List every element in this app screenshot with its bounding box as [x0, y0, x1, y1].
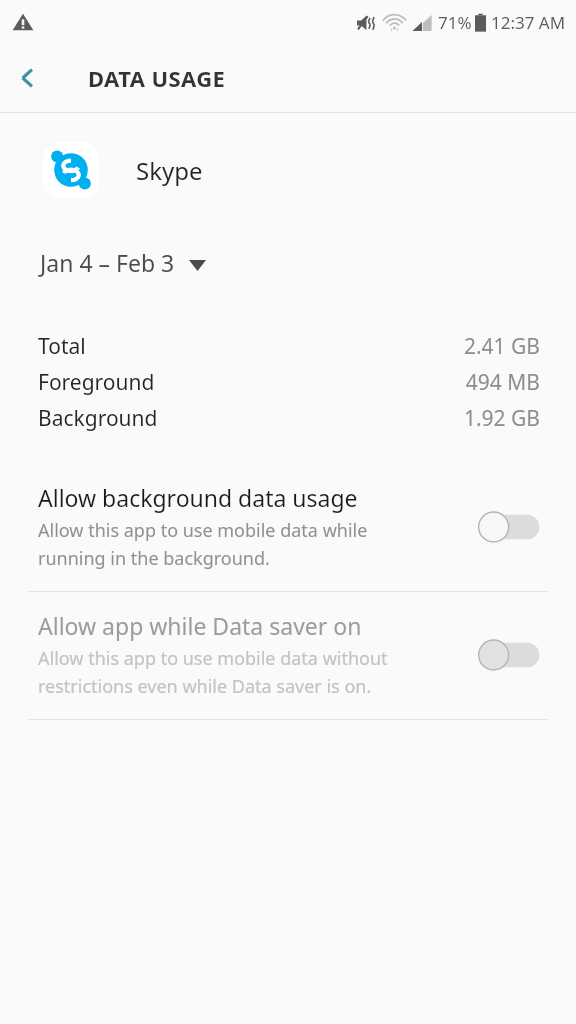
staticText: Foreground [38, 368, 155, 397]
staticText: restrictions even while Data saver is on… [38, 674, 372, 699]
button[interactable]: Allow app while Data saver on [0, 592, 576, 719]
staticText: 71% [438, 11, 472, 34]
staticText: 1.92 GB [463, 404, 540, 433]
button[interactable]: Skype [0, 141, 576, 199]
staticText: Total [38, 332, 86, 361]
button[interactable]: Toggle [476, 512, 542, 542]
button[interactable]: Allow background data usage [0, 464, 576, 591]
staticText: Allow this app to use mobile data while [38, 518, 368, 543]
staticText: 2.41 GB [463, 332, 540, 361]
button[interactable]: Jan 4 – Feb 3 [0, 243, 226, 282]
staticText: Jan 4 – Feb 3 [40, 247, 175, 278]
button[interactable]: Back [0, 50, 56, 106]
staticText: Skype [136, 154, 203, 187]
staticText: DATA USAGE [88, 63, 226, 93]
staticText: 12:37 AM [491, 11, 566, 34]
staticText: Allow this app to use mobile data withou… [38, 646, 388, 671]
staticText: Background [38, 404, 158, 433]
staticText: running in the background. [38, 546, 270, 571]
button[interactable]: Toggle [476, 640, 542, 670]
staticText: 494 MB [465, 368, 540, 397]
staticText: Allow background data usage [38, 482, 358, 513]
staticText: Allow app while Data saver on [38, 610, 362, 641]
